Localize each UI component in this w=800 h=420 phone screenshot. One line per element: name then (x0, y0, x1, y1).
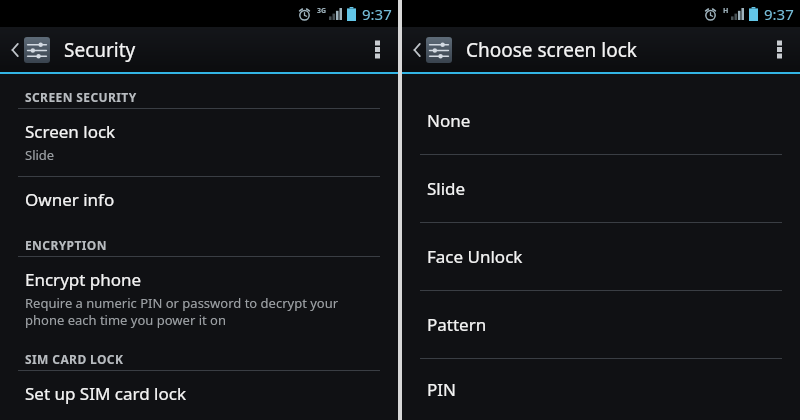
button[interactable]: Encrypt phone (0, 257, 398, 341)
staticText: Pattern (427, 313, 487, 336)
button[interactable]: More options (356, 27, 398, 72)
staticText: Slide (427, 177, 466, 200)
button[interactable]: More options (758, 27, 800, 72)
button[interactable]: Screen lock (0, 109, 398, 176)
button[interactable]: None (402, 87, 800, 154)
button[interactable]: Navigate up (408, 27, 457, 72)
staticText: Security (64, 37, 136, 63)
staticText: SCREEN SECURITY (25, 89, 137, 105)
button[interactable]: PIN (402, 359, 800, 420)
staticText: Set up SIM card lock (25, 382, 186, 405)
staticText: Owner info (25, 188, 115, 211)
staticText: Require a numeric PIN or password to dec… (25, 294, 339, 329)
staticText: Slide (25, 146, 55, 164)
button[interactable]: Slide (402, 155, 800, 222)
staticText: None (427, 109, 471, 132)
staticText: Screen lock (25, 120, 116, 143)
staticText: ENCRYPTION (25, 237, 107, 253)
staticText: Choose screen lock (466, 37, 637, 63)
button[interactable]: Navigate up (6, 27, 55, 72)
staticText: PIN (427, 378, 456, 401)
button[interactable]: Owner info (0, 177, 398, 223)
staticText: H (723, 6, 729, 16)
staticText: Face Unlock (427, 245, 523, 268)
button[interactable]: Face Unlock (402, 223, 800, 290)
button[interactable]: Set up SIM card lock (0, 371, 398, 417)
staticText: SIM CARD LOCK (25, 351, 124, 367)
staticText: 9:37 (362, 4, 392, 24)
button[interactable]: Pattern (402, 291, 800, 358)
staticText: Encrypt phone (25, 268, 142, 291)
staticText: 3G (317, 6, 327, 16)
staticText: 9:37 (764, 4, 794, 24)
